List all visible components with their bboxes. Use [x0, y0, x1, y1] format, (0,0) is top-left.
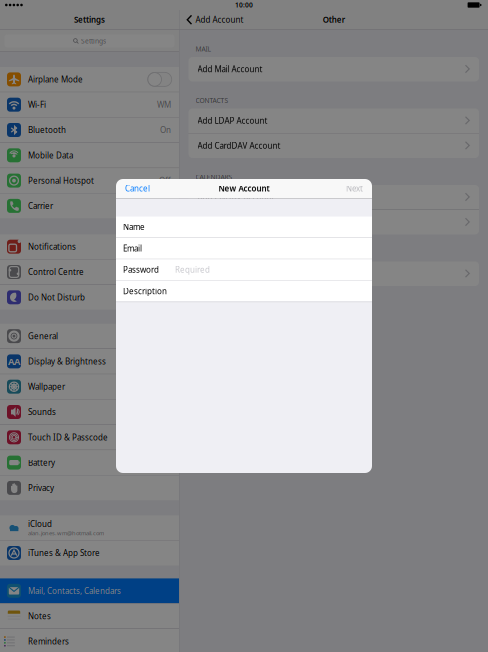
- staticText: On: [160, 125, 171, 135]
- staticText: Add CardDAV Account: [197, 140, 280, 151]
- staticText: Description: [123, 286, 167, 296]
- staticText: Sounds: [28, 407, 56, 417]
- staticText: Add macOS Server Account: [197, 268, 298, 279]
- button[interactable]: Notes: [0, 604, 179, 628]
- button[interactable]: Add CardDAV Account: [188, 133, 479, 158]
- button[interactable]: Next: [346, 183, 372, 194]
- staticText: Wallpaper: [28, 381, 65, 392]
- staticText: iCloud: [28, 518, 52, 529]
- staticText: Display & Brightness: [28, 356, 106, 367]
- staticText: Do Not Disturb: [28, 292, 85, 303]
- staticText: Add Mail Account: [197, 64, 262, 74]
- staticText: Notes: [28, 611, 51, 621]
- staticText: Mail, Contacts, Calendars: [28, 585, 121, 596]
- staticText: Add LDAP Account: [197, 115, 267, 126]
- staticText: Airplane Mode: [28, 74, 83, 85]
- staticText: Touch ID & Passcode: [28, 432, 108, 443]
- staticText: CALENDARS: [195, 173, 232, 181]
- button[interactable]: Bluetooth: [0, 118, 179, 142]
- staticText: AA: [8, 355, 20, 368]
- staticText: WM: [157, 99, 171, 110]
- button[interactable]: Control Centre: [0, 260, 179, 284]
- button[interactable]: AA: [0, 349, 179, 374]
- button[interactable]: Reminders: [0, 629, 179, 652]
- staticText: Password: [123, 264, 159, 275]
- button[interactable]: Battery: [0, 450, 179, 475]
- staticText: Add CalDAV Account: [197, 192, 274, 202]
- button[interactable]: iTunes & App Store: [0, 541, 179, 565]
- staticText: Settings: [74, 14, 105, 25]
- button[interactable]: Add macOS Server Account: [188, 261, 479, 286]
- button[interactable]: Add LDAP Account: [188, 108, 479, 133]
- staticText: Required: [175, 264, 210, 275]
- button[interactable]: Carrier: [0, 193, 179, 218]
- staticText: Email: [123, 243, 142, 254]
- button[interactable]: Add Mail Account: [188, 57, 479, 81]
- staticText: Battery: [28, 457, 55, 468]
- staticText: iTunes & App Store: [28, 548, 100, 558]
- staticText: Bluetooth: [28, 125, 66, 135]
- staticText: General: [28, 331, 58, 341]
- button[interactable]: Notifications: [0, 234, 179, 259]
- button[interactable]: Touch ID & Passcode: [0, 425, 179, 450]
- staticText: Personal Hotspot: [28, 175, 94, 186]
- staticText: Other: [323, 14, 345, 25]
- button[interactable]: Wi-Fi: [0, 92, 179, 117]
- button[interactable]: Mail, Contacts, Calendars: [0, 578, 179, 603]
- staticText: Add Account: [195, 14, 243, 25]
- button[interactable]: iCloud: [0, 515, 179, 540]
- button[interactable]: Personal Hotspot: [0, 168, 179, 193]
- button[interactable]: Airplane Mode: [0, 67, 179, 92]
- staticText: CONTACTS: [195, 96, 228, 105]
- staticText: Reminders: [28, 636, 69, 647]
- staticText: Off: [159, 175, 171, 186]
- button[interactable]: Add CalDAV Account: [188, 185, 479, 209]
- staticText: Notifications: [28, 241, 76, 252]
- staticText: MAIL: [195, 45, 210, 53]
- staticText: Settings: [81, 37, 106, 45]
- staticText: New Account: [218, 183, 269, 194]
- button[interactable]: Sounds: [0, 400, 179, 424]
- staticText: Wi-Fi: [28, 99, 46, 110]
- staticText: Control Centre: [28, 267, 84, 277]
- button[interactable]: Mobile Data: [0, 143, 179, 168]
- staticText: Name: [123, 222, 145, 232]
- staticText: Mobile Data: [28, 150, 73, 161]
- button[interactable]: Add Subscribed Calendar: [188, 210, 479, 234]
- staticText: Cancel: [125, 183, 150, 194]
- staticText: Privacy: [28, 483, 54, 493]
- button[interactable]: General: [0, 324, 179, 348]
- button[interactable]: Cancel: [116, 183, 150, 194]
- staticText: alan.jones.wm@hotmail.com: [28, 529, 104, 537]
- button[interactable]: Privacy: [0, 475, 179, 500]
- button[interactable]: Add Account: [179, 14, 243, 25]
- button[interactable]: Do Not Disturb: [0, 285, 179, 310]
- staticText: 10:00: [235, 1, 253, 9]
- staticText: Next: [346, 183, 363, 194]
- button[interactable]: Wallpaper: [0, 374, 179, 399]
- staticText: Carrier: [28, 201, 53, 211]
